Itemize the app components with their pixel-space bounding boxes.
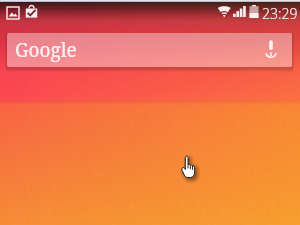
staticText: 23:29 xyxy=(262,4,298,23)
button[interactable]: Google xyxy=(7,33,292,67)
button[interactable]: Voice search xyxy=(260,39,282,61)
staticText: Google xyxy=(15,37,77,63)
